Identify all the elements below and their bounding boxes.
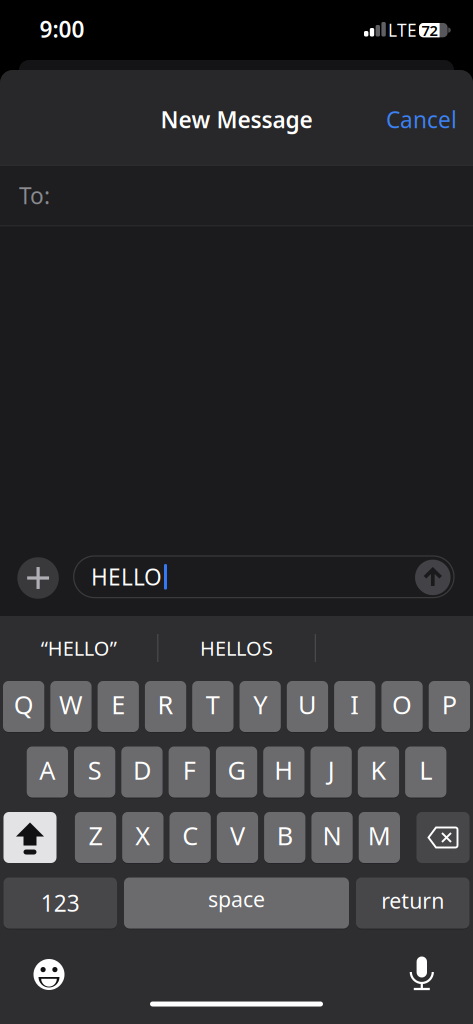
staticText: LTE xyxy=(388,18,417,41)
staticText: 72 xyxy=(421,20,437,40)
staticText: space xyxy=(208,885,265,913)
button[interactable]: Add attachment xyxy=(17,557,59,599)
staticText: J xyxy=(328,753,335,787)
button[interactable]: space xyxy=(124,877,349,928)
staticText: HELLOS xyxy=(200,635,273,661)
staticText: P xyxy=(442,688,457,721)
staticText: U xyxy=(298,688,317,721)
button[interactable]: Shift xyxy=(3,812,56,863)
button[interactable]: Q xyxy=(3,681,44,732)
staticText: V xyxy=(230,819,245,852)
button[interactable]: To xyxy=(0,165,473,225)
button[interactable]: I xyxy=(334,681,375,732)
staticText: 9:00 xyxy=(39,14,84,44)
button[interactable]: Send xyxy=(415,560,451,595)
button[interactable]: S xyxy=(74,746,115,797)
staticText: T xyxy=(206,688,220,721)
staticText: “HELLO” xyxy=(41,635,117,661)
staticText: C xyxy=(182,819,198,852)
staticText: B xyxy=(277,819,293,852)
button[interactable]: Delete xyxy=(416,812,469,863)
staticText: N xyxy=(322,819,341,852)
staticText: return xyxy=(381,886,444,915)
button[interactable]: K xyxy=(358,746,399,797)
button[interactable]: E xyxy=(98,681,139,732)
staticText: I xyxy=(350,688,359,721)
button[interactable]: R xyxy=(145,681,186,732)
staticText: W xyxy=(59,688,83,721)
button[interactable]: X xyxy=(122,812,163,863)
staticText: H xyxy=(274,753,293,787)
staticText: HELLO xyxy=(91,562,162,592)
button[interactable]: return xyxy=(356,877,469,928)
button[interactable]: C xyxy=(169,812,211,863)
button[interactable]: B xyxy=(264,812,305,863)
button[interactable]: O xyxy=(381,681,423,732)
button[interactable]: T xyxy=(192,681,233,732)
staticText: To: xyxy=(19,180,50,210)
button[interactable]: F xyxy=(169,746,210,797)
staticText: D xyxy=(133,753,151,787)
button[interactable]: D xyxy=(121,746,163,797)
button[interactable]: 123 xyxy=(3,877,117,928)
button[interactable]: U xyxy=(287,681,328,732)
button[interactable]: Z xyxy=(75,812,116,863)
staticText: A xyxy=(39,753,55,787)
button[interactable]: Emoji xyxy=(32,957,66,991)
button[interactable]: G xyxy=(216,746,257,797)
staticText: M xyxy=(368,819,391,852)
staticText: Cancel xyxy=(386,104,457,134)
button[interactable]: HELLOS xyxy=(161,625,311,671)
staticText: 123 xyxy=(41,888,80,918)
button[interactable]: Y xyxy=(239,681,281,732)
staticText: F xyxy=(183,753,196,787)
button[interactable]: W xyxy=(50,681,92,732)
button[interactable]: Dictation xyxy=(405,955,439,990)
button[interactable]: P xyxy=(429,681,470,732)
button[interactable]: M xyxy=(359,812,400,863)
button[interactable]: V xyxy=(217,812,258,863)
staticText: K xyxy=(370,753,386,787)
button[interactable]: “HELLO” xyxy=(4,625,154,671)
button[interactable]: A xyxy=(27,746,68,797)
staticText: E xyxy=(111,688,125,721)
button[interactable]: J xyxy=(310,746,352,797)
staticText: Z xyxy=(89,819,103,852)
staticText: Y xyxy=(253,688,267,721)
staticText: L xyxy=(419,753,432,787)
staticText: O xyxy=(392,688,412,721)
staticText: G xyxy=(228,753,246,787)
staticText: X xyxy=(135,819,150,852)
button[interactable]: H xyxy=(263,746,304,797)
staticText: Q xyxy=(14,688,34,721)
staticText: R xyxy=(158,688,174,721)
button[interactable]: Message xyxy=(74,556,454,598)
staticText: S xyxy=(88,753,102,787)
button[interactable]: L xyxy=(405,746,446,797)
button[interactable]: N xyxy=(311,812,353,863)
staticText: New Message xyxy=(160,104,312,134)
button[interactable]: Cancel xyxy=(386,97,457,141)
